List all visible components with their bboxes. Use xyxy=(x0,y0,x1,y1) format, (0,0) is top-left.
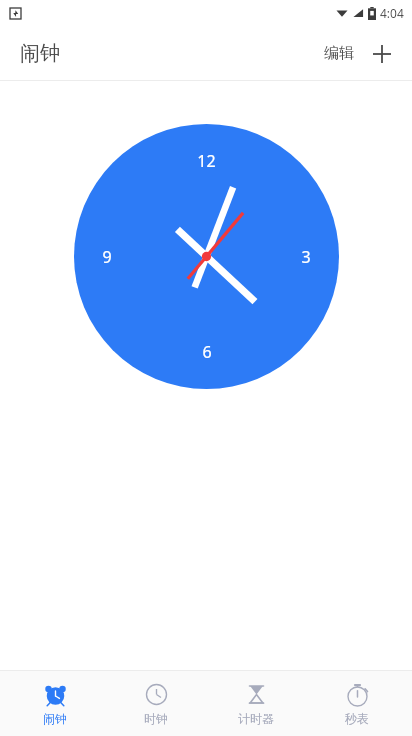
staticText: 12 xyxy=(197,150,216,172)
button[interactable]: Analog clock xyxy=(74,124,339,389)
staticText: 闹钟 xyxy=(20,41,60,66)
staticText: 4:04 xyxy=(380,5,404,21)
button[interactable]: 秒表 xyxy=(312,676,402,732)
staticText: 时钟 xyxy=(144,711,168,726)
staticText: 编辑 xyxy=(324,44,354,63)
button[interactable]: 时钟 xyxy=(111,676,201,732)
staticText: 计时器 xyxy=(238,711,274,726)
button[interactable]: 闹钟 xyxy=(10,676,100,732)
staticText: 闹钟 xyxy=(43,711,67,726)
button[interactable]: 计时器 xyxy=(211,676,301,732)
staticText: 6 xyxy=(202,341,212,363)
button[interactable]: 编辑 xyxy=(320,38,358,69)
staticText: 秒表 xyxy=(345,711,369,726)
button[interactable]: Add alarm xyxy=(368,40,396,68)
staticText: 3 xyxy=(301,246,311,268)
staticText: 9 xyxy=(102,246,112,268)
